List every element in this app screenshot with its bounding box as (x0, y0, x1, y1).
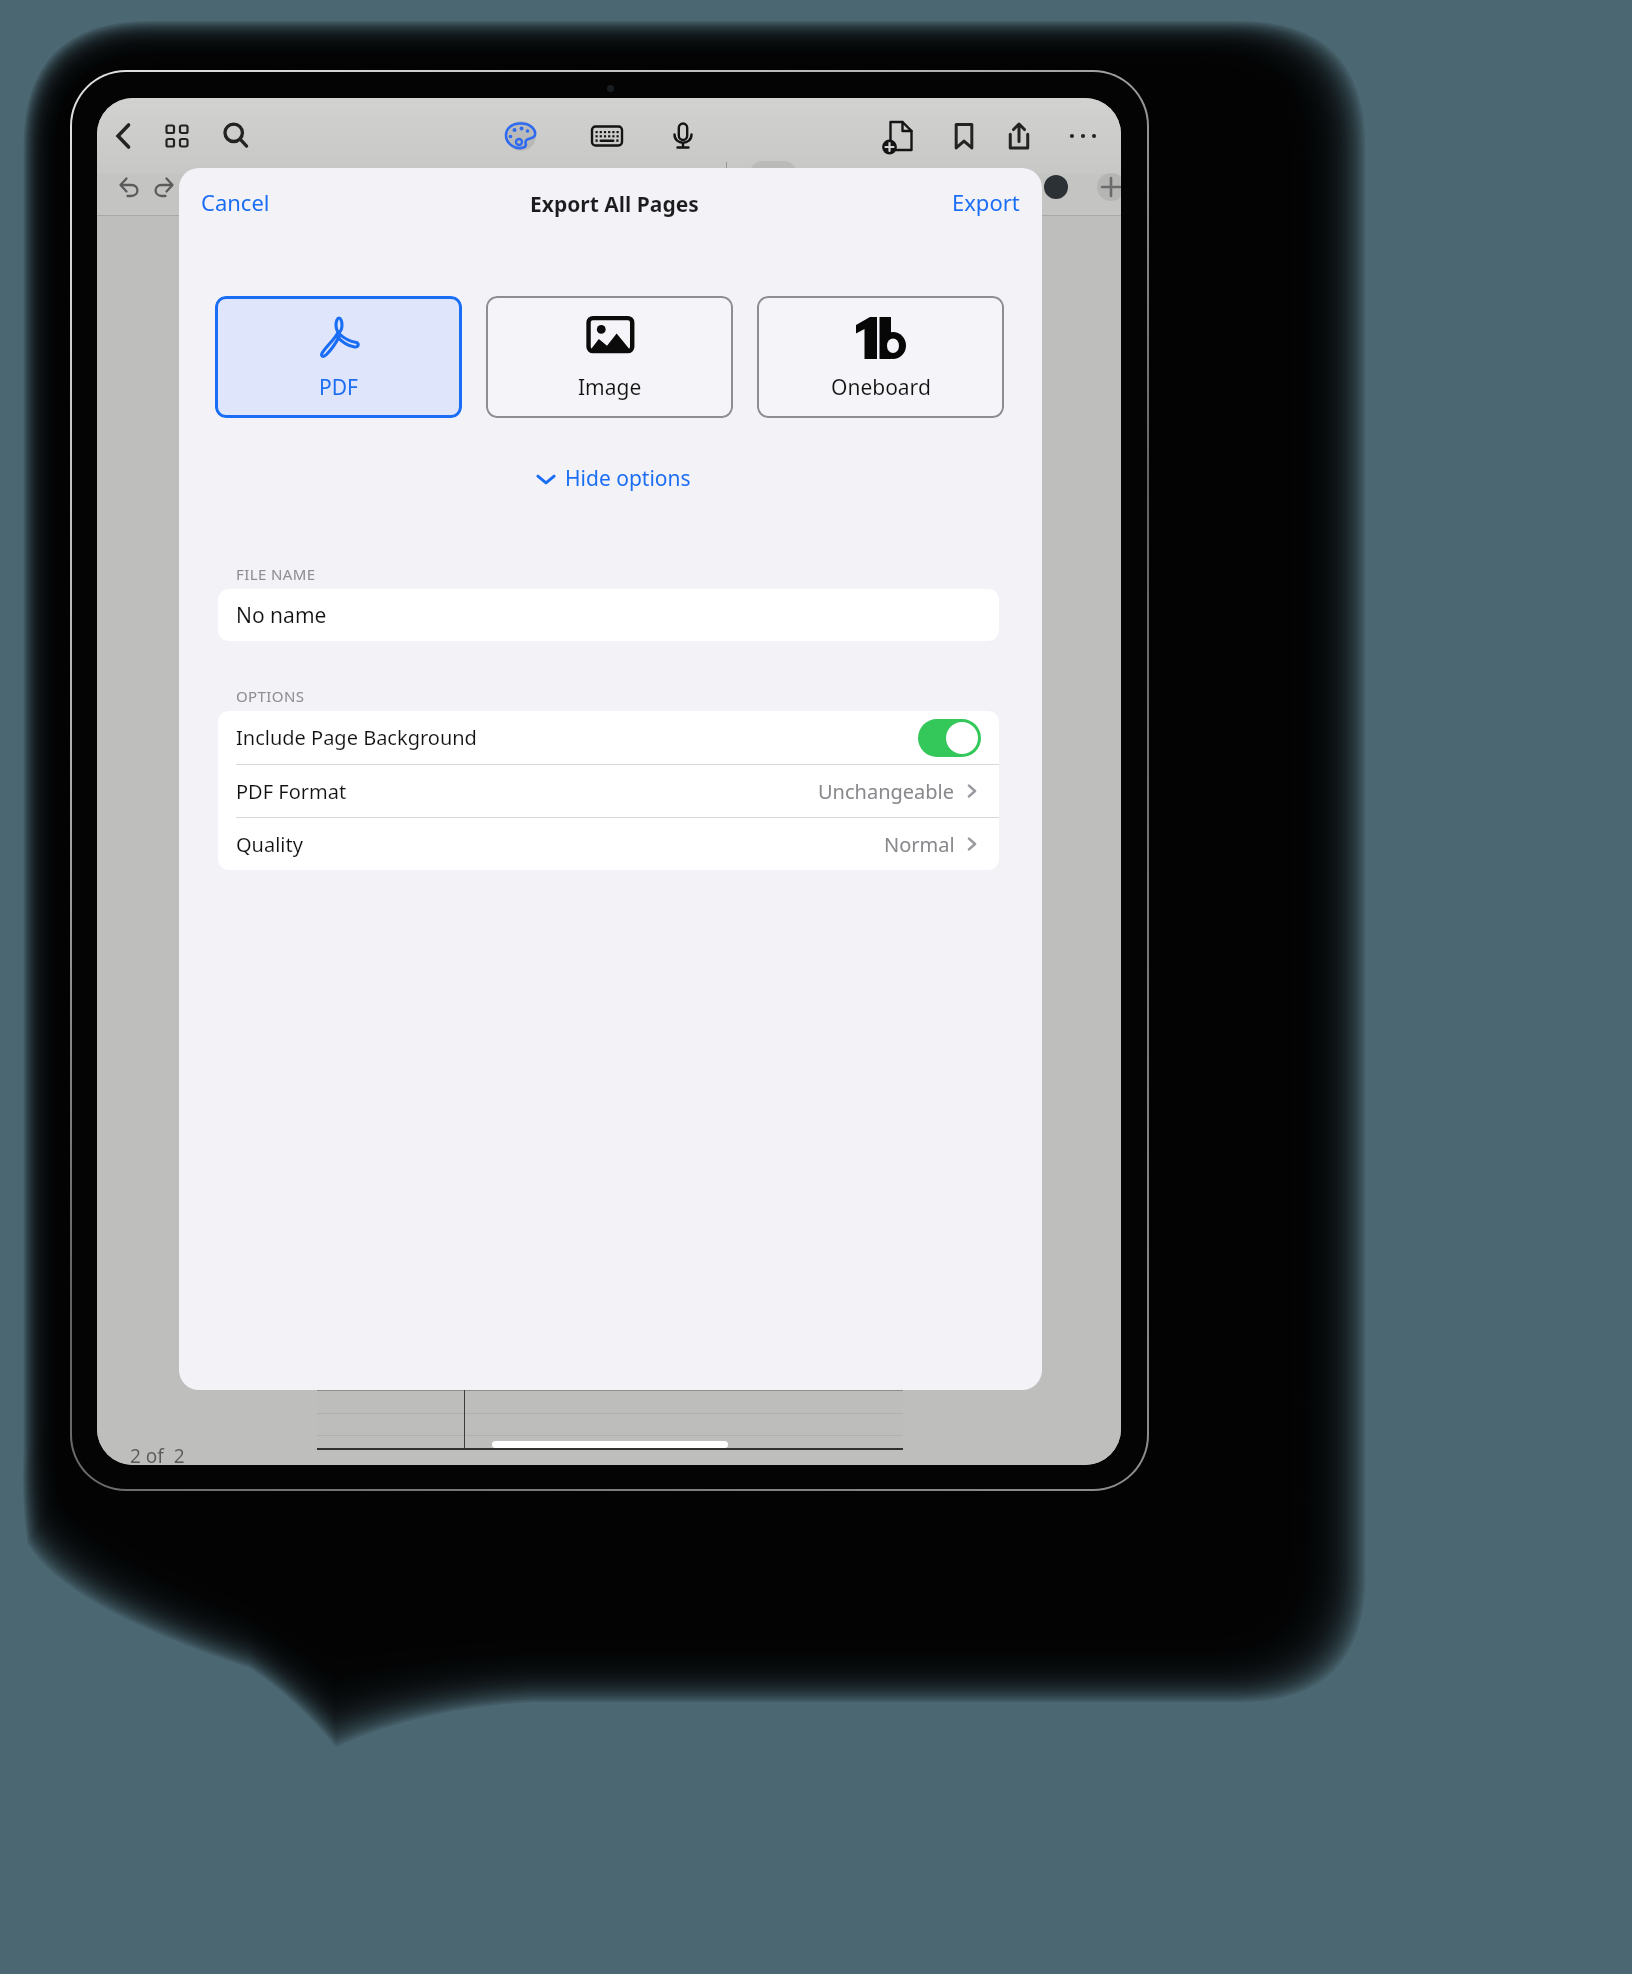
button[interactable]: Quality (218, 818, 999, 870)
button[interactable]: Back (101, 113, 147, 159)
staticText: FILE NAME (236, 564, 316, 584)
button[interactable]: Tools (496, 111, 546, 161)
button[interactable]: Add tool (1097, 173, 1121, 201)
button[interactable]: Pages (154, 113, 200, 159)
button[interactable]: No name (218, 589, 999, 641)
button[interactable]: Pen colour (1044, 175, 1068, 199)
staticText: Quality (236, 831, 303, 858)
button[interactable]: Undo (108, 165, 152, 209)
button[interactable]: Hide options (527, 457, 699, 500)
staticText: Cancel (201, 187, 270, 217)
button[interactable]: Search (213, 113, 259, 159)
staticText: Image (578, 373, 642, 402)
button[interactable]: Export (941, 177, 1031, 227)
button[interactable]: Bookmark (941, 113, 987, 159)
staticText: OPTIONS (236, 686, 305, 706)
button[interactable]: Image (486, 296, 733, 418)
button[interactable]: PDF (215, 296, 462, 418)
staticText: Normal (884, 831, 955, 858)
staticText: PDF (319, 373, 358, 402)
staticText: Include Page Background (236, 724, 477, 751)
button[interactable]: Keyboard (584, 113, 630, 159)
staticText: Unchangeable (818, 778, 955, 805)
button[interactable]: Share (996, 113, 1042, 159)
staticText: Export (952, 187, 1020, 217)
button[interactable]: Include Page Background (218, 711, 999, 764)
button[interactable]: Microphone (660, 113, 706, 159)
button[interactable]: New page (878, 113, 924, 159)
button[interactable]: Redo (141, 165, 185, 209)
staticText: No name (236, 601, 327, 630)
staticText: Hide options (565, 464, 691, 493)
button[interactable]: More (1060, 113, 1106, 159)
staticText: PDF Format (236, 778, 347, 805)
button[interactable]: Oneboard (757, 296, 1004, 418)
staticText: 2 of 2 (130, 1443, 185, 1465)
button[interactable]: PDF Format (218, 765, 999, 817)
staticText: Export All Pages (530, 190, 699, 219)
button[interactable]: Cancel (190, 177, 281, 227)
staticText: Oneboard (831, 373, 931, 402)
